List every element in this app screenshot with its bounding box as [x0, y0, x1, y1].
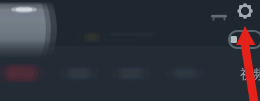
button[interactable]: Connect to device	[0, 0, 20, 18]
staticText: 视频	[240, 66, 260, 82]
button[interactable]: Settings	[0, 0, 16, 16]
button[interactable]: Item 3	[0, 0, 40, 3]
button[interactable]: Item 4	[0, 0, 40, 3]
button[interactable]: Item 2	[0, 0, 40, 3]
button[interactable]: Recording	[0, 0, 48, 3]
